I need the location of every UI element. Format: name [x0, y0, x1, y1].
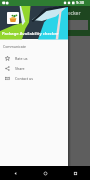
staticText: Package Availability Checker — [14, 10, 81, 17]
staticText: Communicate — [3, 44, 26, 49]
staticText: Package Availability checker — [2, 31, 59, 37]
button[interactable]: Rate us — [0, 53, 68, 63]
staticText: Contact us — [15, 76, 33, 81]
button[interactable]: Contact us — [0, 73, 68, 83]
button[interactable]: Home — [30, 166, 60, 180]
button[interactable]: Back — [0, 166, 30, 180]
staticText: Rate us — [15, 56, 28, 61]
staticText: 9:30 — [76, 0, 84, 5]
button[interactable]: Share — [0, 63, 68, 73]
button[interactable]: Recents — [60, 166, 90, 180]
staticText: Share — [15, 66, 25, 71]
